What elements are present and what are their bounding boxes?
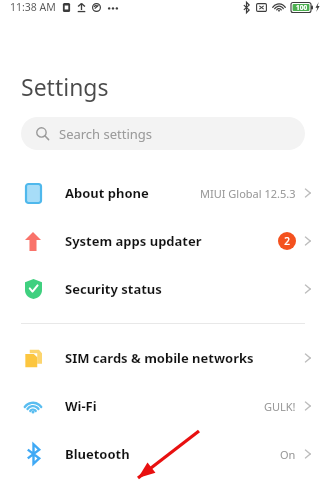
button[interactable]: Bluetooth	[0, 430, 326, 478]
button[interactable]: SIM cards & mobile networks	[0, 334, 326, 382]
staticText: Bluetooth	[65, 445, 130, 463]
staticText: Security status	[65, 280, 162, 298]
staticText: GULK!	[264, 399, 296, 414]
staticText: Search settings	[59, 125, 153, 143]
button[interactable]: System apps updater	[0, 217, 326, 265]
staticText: 11:38 AM	[10, 0, 56, 14]
staticText: 2	[284, 234, 290, 248]
staticText: SIM cards & mobile networks	[65, 349, 254, 367]
staticText: Settings	[21, 71, 109, 102]
staticText: System apps updater	[65, 232, 202, 250]
button[interactable]: Search settings	[21, 117, 305, 150]
staticText: About phone	[65, 184, 149, 202]
staticText: On	[280, 447, 296, 462]
staticText: Wi-Fi	[65, 397, 97, 415]
button[interactable]: About phone	[0, 169, 326, 217]
staticText: MIUI Global 12.5.3	[200, 186, 296, 201]
button[interactable]: Security status	[0, 265, 326, 313]
button[interactable]: Wi-Fi	[0, 382, 326, 430]
staticText: 100	[296, 3, 308, 12]
